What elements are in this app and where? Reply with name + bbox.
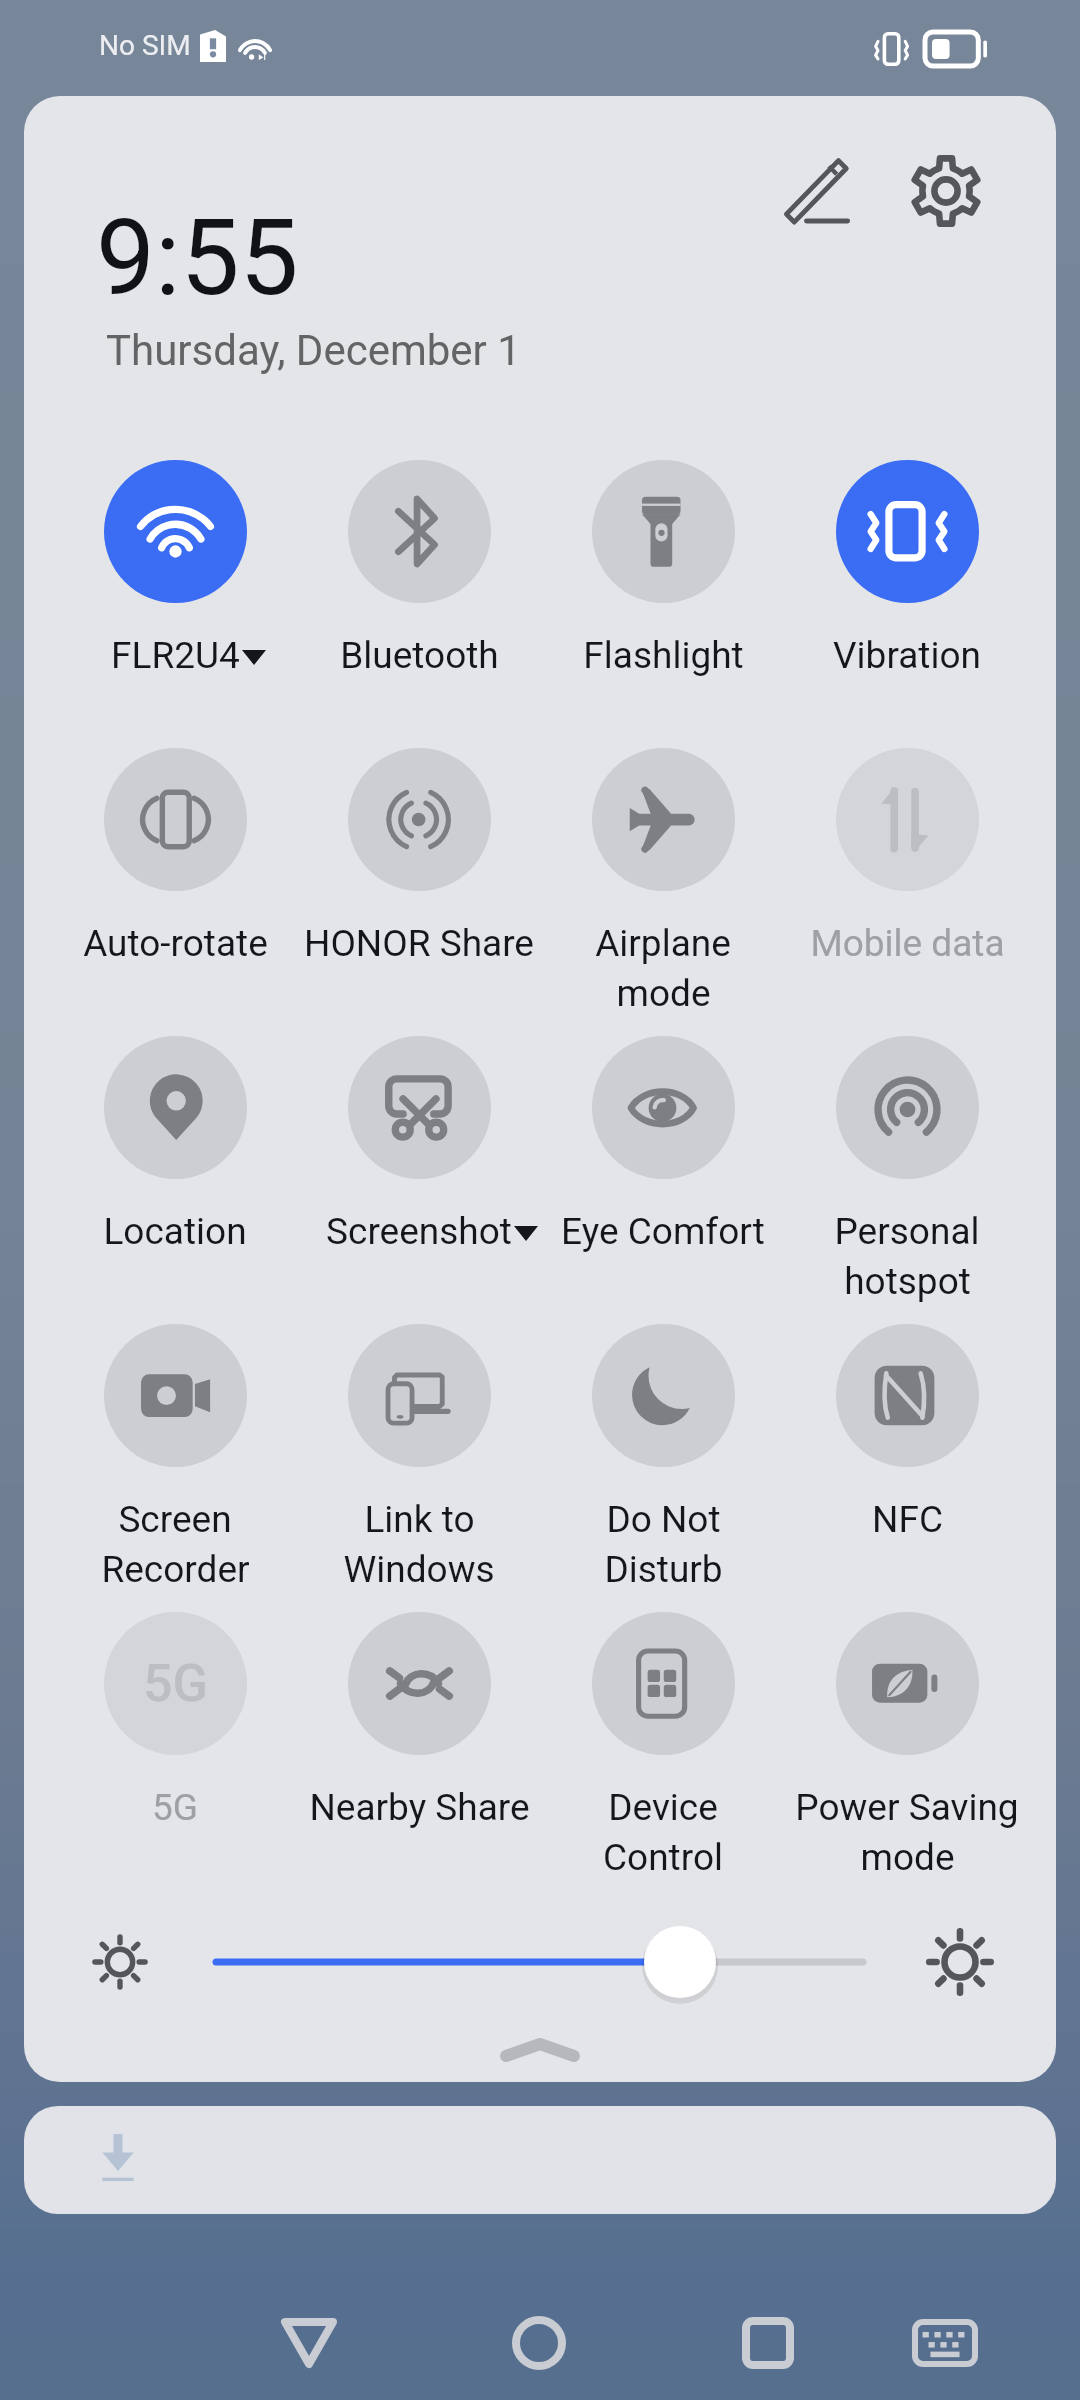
button[interactable]: Settings (887, 132, 1005, 250)
staticText: Flashlight (583, 634, 744, 677)
staticText: Thursday, December 1 (106, 326, 521, 375)
button[interactable]: Device (539, 1612, 787, 1879)
staticText: mode (860, 1836, 955, 1879)
button[interactable]: Nearby Share (295, 1612, 543, 1829)
staticText: HONOR Share (304, 922, 534, 965)
staticText: Personal (834, 1210, 980, 1253)
button[interactable]: Mobile data (783, 748, 1031, 965)
staticText: 5G (143, 1653, 208, 1714)
staticText: hotspot (844, 1260, 971, 1303)
staticText: Airplane (595, 922, 731, 965)
button[interactable]: Auto-rotate (51, 748, 299, 965)
staticText: Link to (364, 1498, 475, 1541)
button[interactable]: Eye Comfort (539, 1036, 787, 1253)
button[interactable]: 5G (51, 1612, 299, 1829)
button[interactable]: Location (51, 1036, 299, 1253)
button[interactable]: Bluetooth (295, 460, 543, 677)
button[interactable]: Vibration (783, 460, 1031, 677)
button[interactable]: FLR2U4 (51, 460, 299, 677)
staticText: Nearby Share (309, 1786, 530, 1829)
staticText: Do Not (606, 1498, 721, 1541)
staticText: Vibration (833, 634, 981, 677)
button[interactable]: Home (477, 2281, 601, 2400)
staticText: Recorder (101, 1548, 250, 1591)
button[interactable]: NFC (783, 1324, 1031, 1541)
button[interactable]: Airplane (539, 748, 787, 1015)
button[interactable]: Personal (783, 1036, 1031, 1303)
staticText: Windows (343, 1548, 495, 1591)
button[interactable]: Flashlight (539, 460, 787, 677)
button[interactable]: HONOR Share (295, 748, 543, 965)
button[interactable]: Do Not (539, 1324, 787, 1591)
button[interactable]: Back (247, 2281, 371, 2400)
staticText: mode (616, 972, 711, 1015)
staticText: Control (603, 1836, 723, 1879)
staticText: Screenshot (326, 1210, 512, 1253)
staticText: Disturb (604, 1548, 723, 1591)
staticText: Location (103, 1210, 247, 1253)
staticText: Screen (118, 1498, 232, 1541)
staticText: NFC (872, 1498, 943, 1541)
button[interactable]: Recent apps (706, 2281, 830, 2400)
staticText: Power Saving (795, 1786, 1019, 1829)
button[interactable]: Screenshot (295, 1036, 543, 1253)
staticText: Mobile data (810, 922, 1005, 965)
button[interactable]: Notifications (24, 2106, 1056, 2214)
staticText: Eye Comfort (561, 1210, 765, 1253)
button[interactable]: Edit quick settings (760, 134, 872, 246)
button[interactable]: Power Saving (783, 1612, 1031, 1879)
button[interactable]: Link to (295, 1324, 543, 1591)
button[interactable]: Brightness (192, 1902, 887, 2022)
staticText: FLR2U4 (111, 634, 240, 677)
button[interactable]: Keyboard (883, 2281, 1007, 2400)
staticText: Bluetooth (340, 634, 499, 677)
staticText: 9:55 (96, 197, 299, 320)
staticText: 5G (152, 1786, 198, 1829)
staticText: No SIM (99, 29, 191, 62)
staticText: Auto-rotate (83, 922, 268, 965)
staticText: Device (608, 1786, 718, 1829)
button[interactable]: Screen (51, 1324, 299, 1591)
